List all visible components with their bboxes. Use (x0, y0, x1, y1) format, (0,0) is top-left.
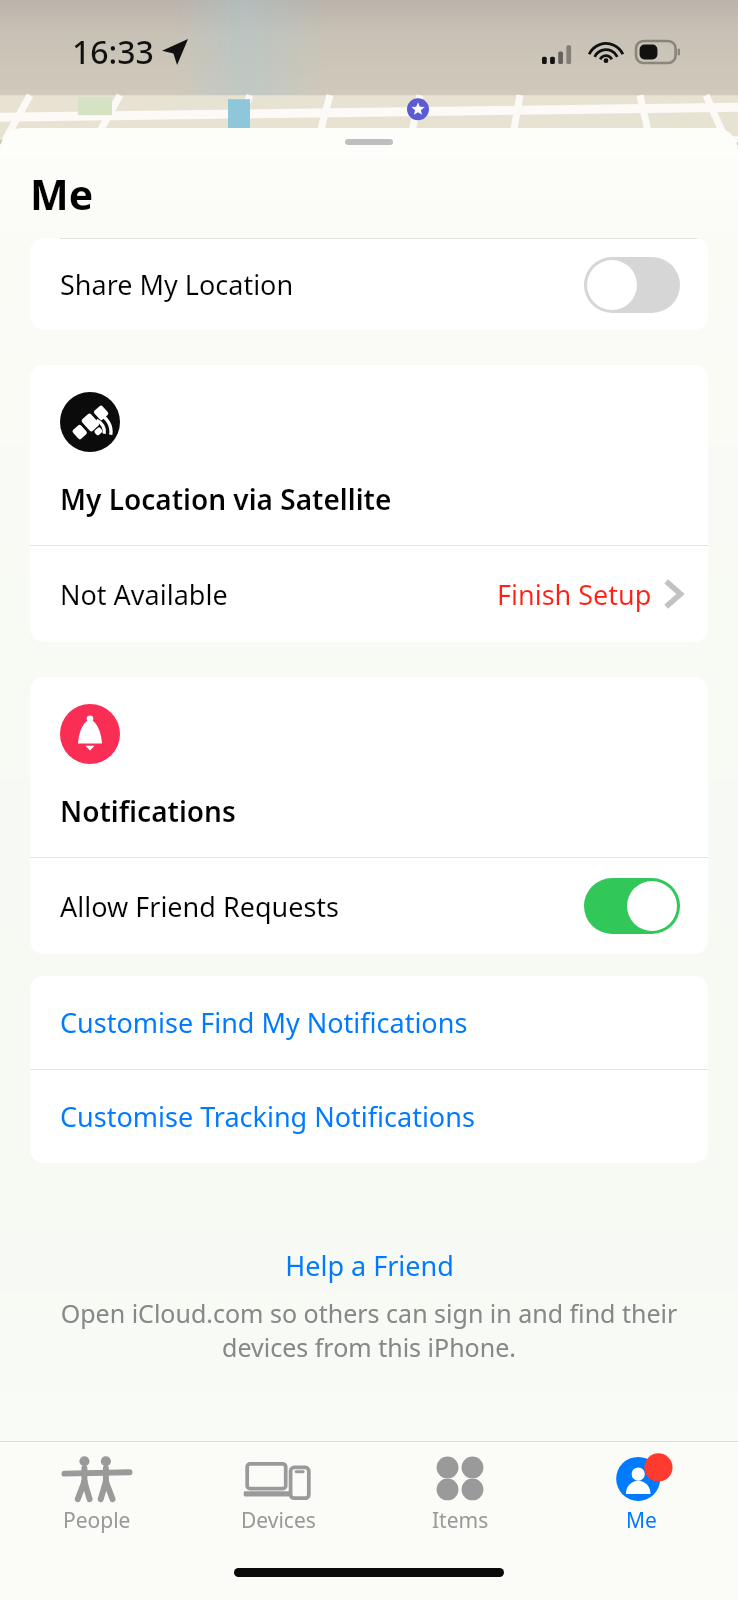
button[interactable]: People (12, 1442, 182, 1535)
button[interactable]: Share My Location (30, 239, 708, 330)
staticText: Customise Tracking Notifications (60, 1098, 475, 1135)
staticText: Notifications (60, 792, 236, 830)
button[interactable]: Notifications (30, 677, 708, 857)
staticText: Not Available (60, 576, 497, 613)
other: Location active (162, 39, 188, 65)
button[interactable]: Me (556, 1442, 726, 1535)
staticText: Devices (241, 1506, 316, 1535)
staticText: Me (30, 166, 94, 222)
button[interactable]: Allow Friend Requests (30, 858, 708, 954)
staticText: Items (432, 1506, 489, 1535)
staticText: Share My Location (60, 266, 584, 303)
staticText: People (63, 1506, 131, 1535)
button[interactable]: Devices (193, 1442, 363, 1535)
button[interactable]: Customise Tracking Notifications (30, 1070, 708, 1163)
other: Notifications (60, 704, 120, 764)
button[interactable]: Help a Friend (0, 1243, 738, 1288)
button[interactable]: Items (375, 1442, 545, 1535)
staticText: Allow Friend Requests (60, 888, 584, 925)
button[interactable]: Customise Find My Notifications (30, 976, 708, 1069)
staticText: Open iCloud.com so others can sign in an… (56, 1296, 682, 1364)
button[interactable]: Not Available (30, 546, 708, 642)
staticText: 16:33 (72, 30, 154, 74)
staticText: Customise Find My Notifications (60, 1004, 468, 1041)
button[interactable]: On (584, 878, 680, 934)
button[interactable]: Off (584, 257, 680, 313)
other: Satellite (60, 392, 120, 452)
staticText: Me (626, 1506, 657, 1535)
staticText: My Location via Satellite (60, 480, 392, 518)
staticText: Finish Setup (497, 576, 652, 613)
staticText: Help a Friend (285, 1247, 454, 1284)
button[interactable]: Satellite (30, 365, 708, 545)
